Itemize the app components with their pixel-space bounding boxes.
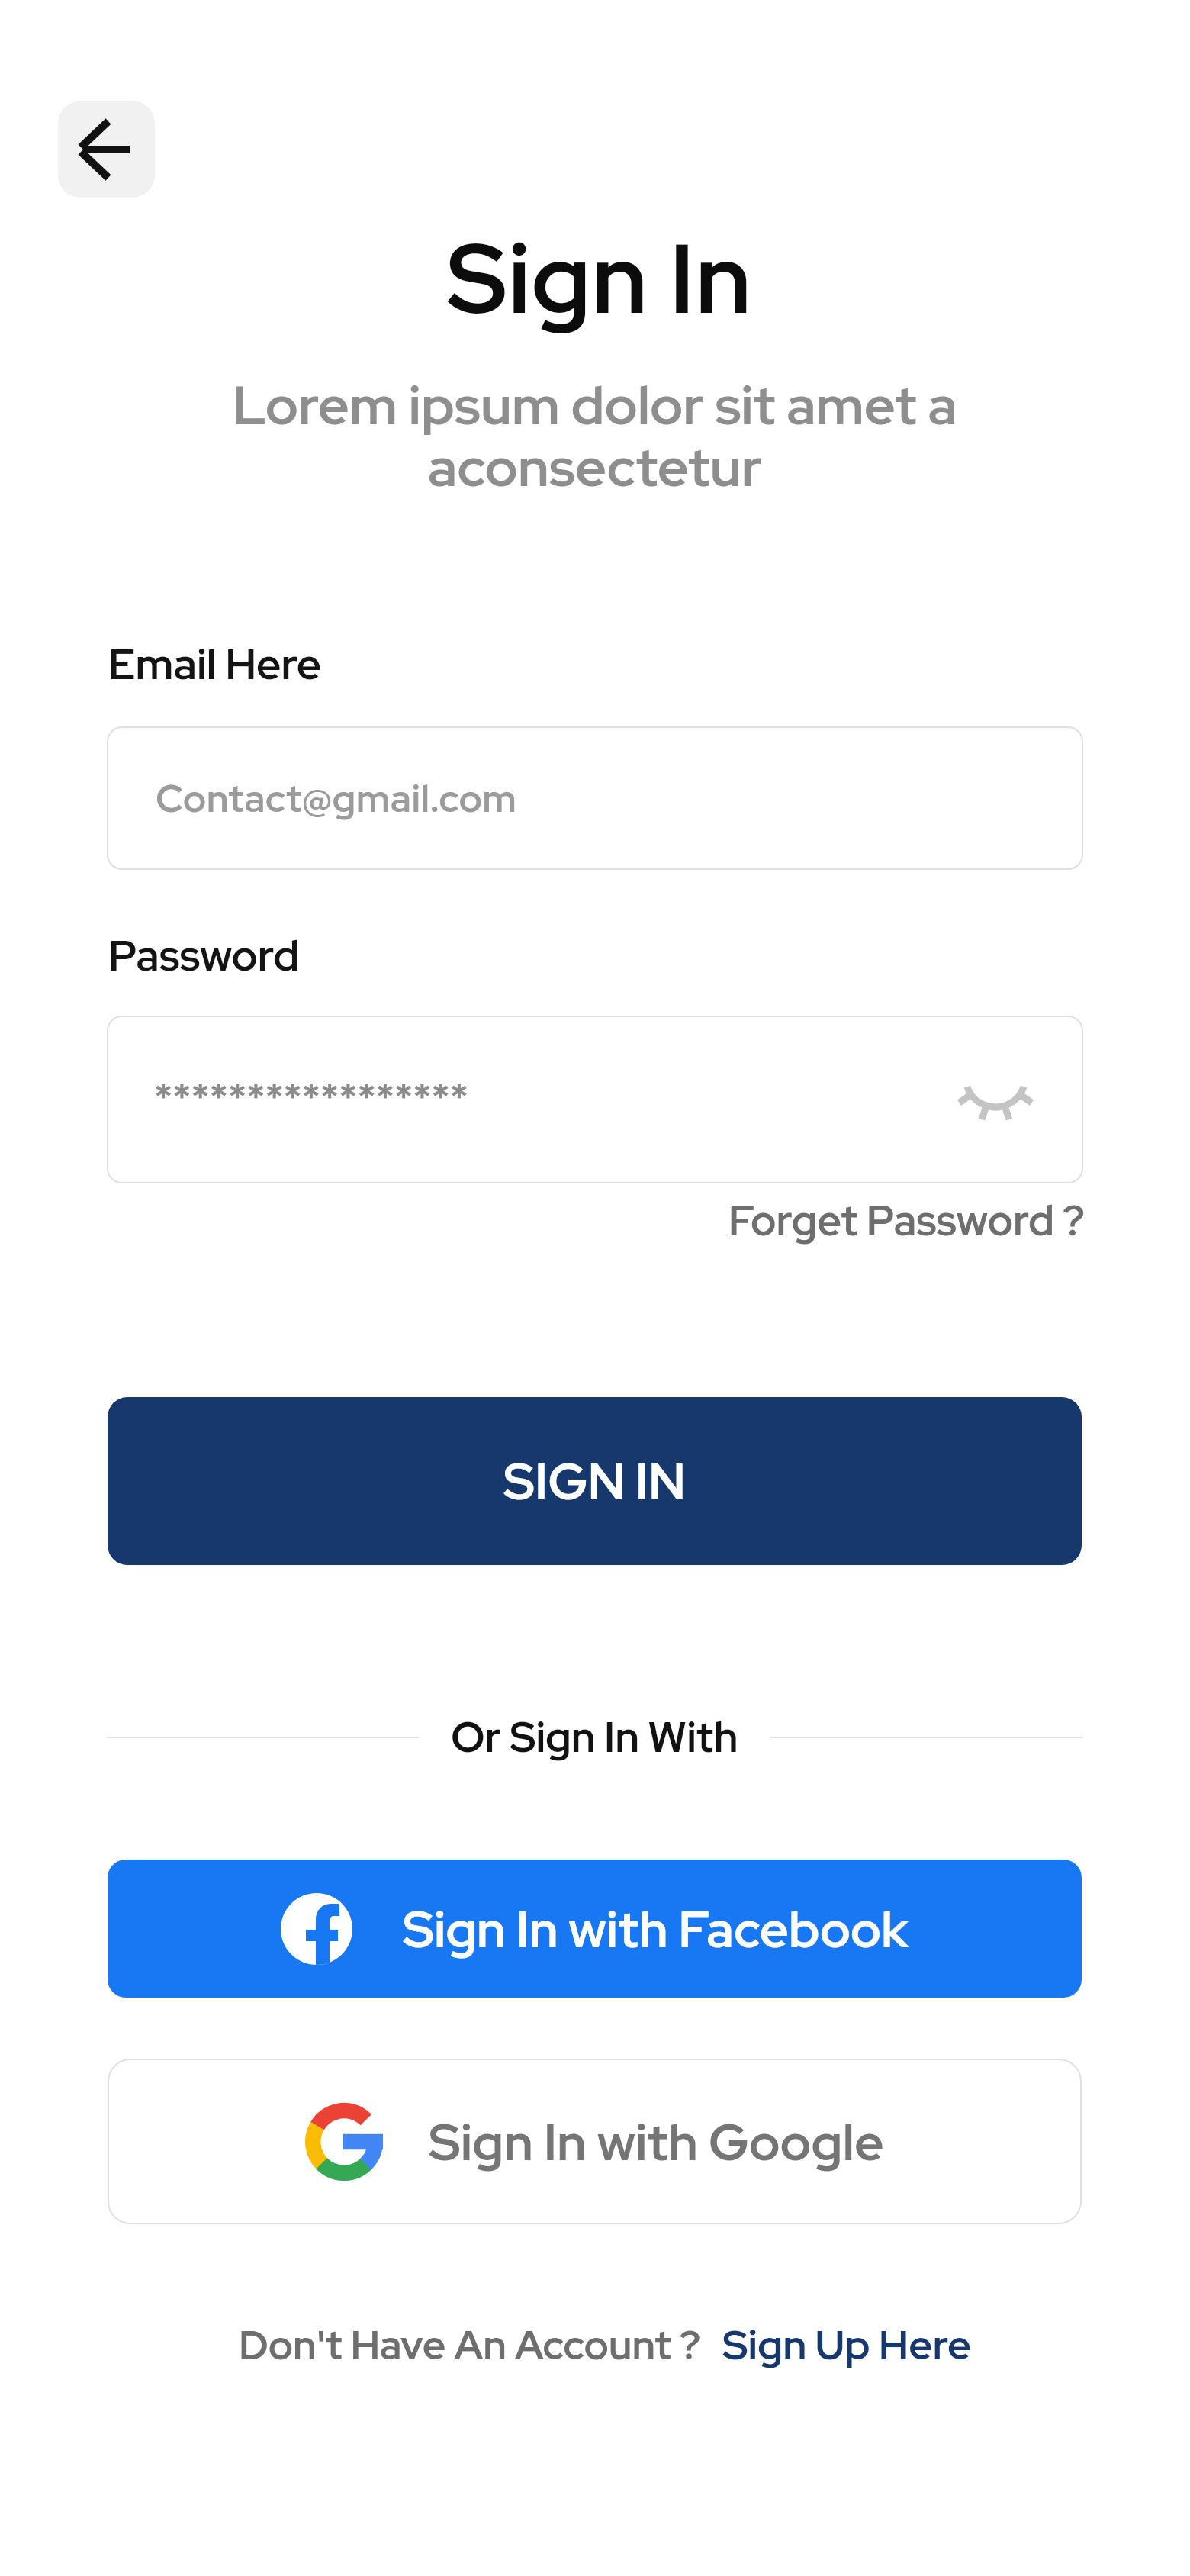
button[interactable]: Forget Password ? [728,1193,1085,1248]
button[interactable]: Contact@gmail.com [107,726,1083,870]
staticText: ***************** [154,1071,468,1123]
staticText: Password [108,927,300,984]
staticText: Sign In with Facebook [403,1896,909,1963]
button[interactable]: Sign In with Facebook [108,1860,1082,1998]
staticText: SIGN IN [503,1448,686,1515]
staticText: Lorem ipsum dolor sit amet a aconsectetu… [0,369,1190,502]
staticText: Contact@gmail.com [156,773,517,823]
button[interactable]: ***************** [107,1016,1083,1183]
staticText: Email Here [108,636,322,692]
staticText: Sign In [5,214,1190,343]
staticText: Forget Password ? [728,1193,1085,1248]
button[interactable] [58,101,155,198]
staticText: Don't Have An Account ? [239,2318,701,2372]
button[interactable]: SIGN IN [108,1397,1082,1565]
button[interactable]: Sign In with Google [108,2059,1082,2224]
staticText: Or Sign In With [451,1709,738,1765]
staticText: Sign In with Google [429,2108,884,2176]
button[interactable]: Sign Up Here [722,2317,972,2372]
